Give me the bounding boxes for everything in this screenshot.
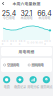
staticText: 本月用电 xyxy=(38,16,50,20)
staticText: 16:00 xyxy=(35,41,43,44)
button[interactable]: Back xyxy=(0,0,6,7)
staticText: 照明用电 xyxy=(31,63,43,67)
staticText: 20:00 xyxy=(44,39,51,45)
button[interactable]: 缴费记录 xyxy=(13,76,26,88)
staticText: 本周用电 xyxy=(20,16,32,20)
button[interactable]: 用电分析 xyxy=(26,76,40,88)
staticText: 00:00 xyxy=(2,39,9,45)
staticText: 空调用电 xyxy=(7,63,19,67)
button[interactable]: 电费 xyxy=(0,76,13,88)
staticText: 今日用电 xyxy=(3,16,15,20)
staticText: 32.1 xyxy=(20,9,32,18)
staticText: 08:00 xyxy=(19,39,26,45)
staticText: 04:00 xyxy=(10,39,17,45)
staticText: 25.4 xyxy=(2,9,16,18)
button[interactable]: 用电明细 xyxy=(1,47,52,56)
staticText: 服务网点 xyxy=(40,85,52,89)
button[interactable]: 服务网点 xyxy=(40,76,53,88)
staticText: 缴费记录 xyxy=(14,85,26,89)
staticText: 本周六电量数据 xyxy=(12,1,40,6)
staticText: 电费 xyxy=(4,85,10,89)
staticText: 用电明细 xyxy=(18,49,34,54)
staticText: 用电分析 xyxy=(27,85,39,89)
staticText: 66.4 xyxy=(37,9,51,18)
staticText: 12:00 xyxy=(27,41,35,44)
